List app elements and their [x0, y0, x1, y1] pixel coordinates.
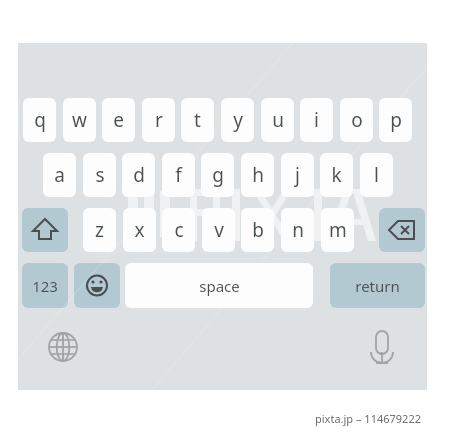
- button[interactable]: return: [330, 263, 425, 308]
- staticText: a: [54, 162, 65, 188]
- staticText: z: [95, 217, 104, 243]
- button[interactable]: g: [201, 153, 234, 197]
- staticText: pixta.jp – 114679222: [315, 411, 421, 426]
- button[interactable]: 123: [22, 263, 68, 308]
- button[interactable]: i: [300, 98, 333, 142]
- button[interactable]: Backspace: [379, 208, 425, 252]
- staticText: u: [272, 107, 284, 133]
- button[interactable]: v: [202, 208, 235, 252]
- button[interactable]: Emoji: [74, 263, 120, 308]
- button[interactable]: Voice input: [363, 326, 401, 368]
- button[interactable]: o: [340, 98, 373, 142]
- staticText: j: [295, 162, 300, 188]
- button[interactable]: u: [261, 98, 294, 142]
- staticText: f: [175, 162, 182, 188]
- staticText: c: [174, 217, 184, 243]
- staticText: m: [329, 217, 347, 243]
- button[interactable]: b: [241, 208, 274, 252]
- button[interactable]: Change keyboard language: [44, 328, 82, 366]
- staticText: 123: [32, 276, 58, 296]
- button[interactable]: a: [43, 153, 76, 197]
- staticText: l: [374, 162, 379, 188]
- button[interactable]: y: [221, 98, 254, 142]
- button[interactable]: x: [123, 208, 156, 252]
- button[interactable]: Shift: [22, 208, 68, 252]
- staticText: t: [194, 107, 201, 133]
- staticText: d: [133, 162, 145, 188]
- staticText: k: [331, 162, 342, 188]
- button[interactable]: j: [281, 153, 314, 197]
- button[interactable]: k: [320, 153, 353, 197]
- staticText: space: [199, 276, 240, 296]
- staticText: e: [113, 107, 124, 133]
- staticText: h: [252, 162, 264, 188]
- staticText: return: [355, 276, 400, 296]
- staticText: b: [252, 217, 264, 243]
- staticText: g: [212, 162, 224, 188]
- button[interactable]: space: [125, 263, 313, 308]
- staticText: q: [34, 107, 46, 133]
- button[interactable]: q: [23, 98, 56, 142]
- staticText: r: [155, 107, 163, 133]
- staticText: o: [351, 107, 363, 133]
- button[interactable]: z: [83, 208, 116, 252]
- button[interactable]: s: [83, 153, 116, 197]
- button[interactable]: w: [63, 98, 96, 142]
- staticText: w: [72, 107, 87, 133]
- staticText: y: [233, 107, 243, 133]
- button[interactable]: p: [379, 98, 412, 142]
- staticText: p: [390, 107, 402, 133]
- staticText: i: [314, 107, 319, 133]
- button[interactable]: e: [102, 98, 135, 142]
- staticText: s: [95, 162, 105, 188]
- button[interactable]: f: [162, 153, 195, 197]
- staticText: x: [134, 217, 145, 243]
- button[interactable]: t: [181, 98, 214, 142]
- button[interactable]: m: [321, 208, 354, 252]
- button[interactable]: n: [281, 208, 314, 252]
- button[interactable]: d: [122, 153, 155, 197]
- button[interactable]: r: [142, 98, 175, 142]
- button[interactable]: l: [360, 153, 393, 197]
- button[interactable]: c: [162, 208, 195, 252]
- staticText: v: [214, 217, 224, 243]
- button[interactable]: h: [241, 153, 274, 197]
- staticText: n: [292, 217, 304, 243]
